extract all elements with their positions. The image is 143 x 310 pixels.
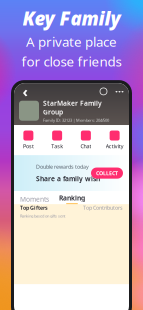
staticText: ••• <box>115 86 124 97</box>
staticText: for close friends <box>21 52 121 70</box>
staticText: Ranking based on gifts sent <box>20 213 65 218</box>
button[interactable]: Back <box>19 86 31 96</box>
staticText: Ranking <box>59 193 85 202</box>
staticText: Task <box>51 143 63 150</box>
staticText: ‹ <box>22 82 27 101</box>
staticText: Activity <box>106 143 124 150</box>
staticText: Top Gifters <box>20 204 48 211</box>
button[interactable]: Report <box>100 88 107 95</box>
button[interactable]: Ranking <box>59 193 85 205</box>
staticText: Moments <box>20 195 49 204</box>
staticText: Share a family wish <box>36 174 100 183</box>
button[interactable]: Moments <box>20 195 49 204</box>
button[interactable]: Chat <box>71 131 100 150</box>
staticText: A private place <box>26 33 117 50</box>
button[interactable]: Task <box>43 131 72 150</box>
staticText: Double rewards today <box>36 163 89 170</box>
staticText: Top Contributors <box>83 204 123 211</box>
button[interactable]: Post <box>14 131 43 150</box>
staticText: COLLECT <box>96 170 118 177</box>
staticText: Post <box>23 143 34 150</box>
staticText: Family ID: 32123 | Members: 204/500 <box>43 117 109 123</box>
button[interactable]: Activity <box>100 131 129 150</box>
button[interactable]: COLLECT <box>91 168 123 179</box>
staticText: StarMaker Family Group <box>43 99 102 116</box>
staticText: Chat <box>80 143 91 150</box>
staticText: Key Family <box>22 6 120 31</box>
button[interactable]: More <box>115 86 124 97</box>
